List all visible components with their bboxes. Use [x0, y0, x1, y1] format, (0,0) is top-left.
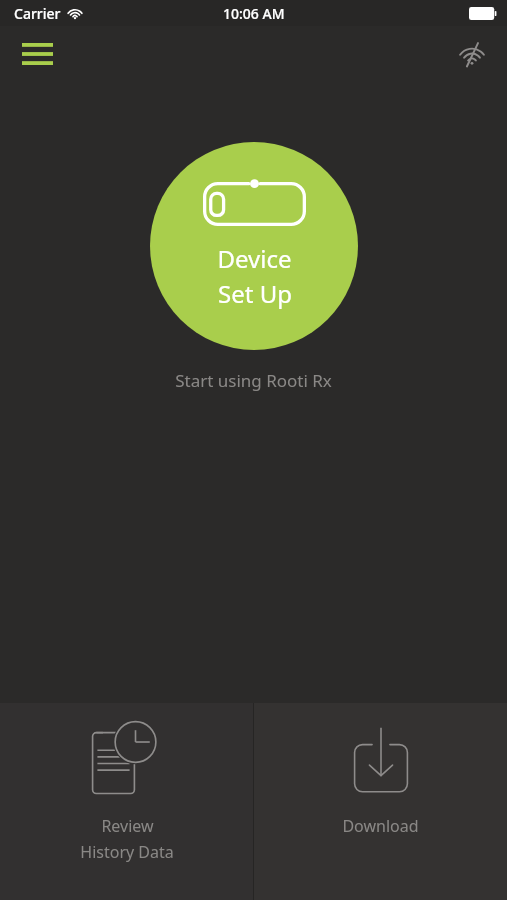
staticText: Device	[217, 242, 292, 275]
staticText: History Data	[80, 841, 174, 863]
staticText: Download	[342, 815, 419, 837]
staticText: Carrier	[14, 4, 61, 23]
staticText: Start using Rooti Rx	[175, 369, 332, 392]
button[interactable]: Device	[150, 142, 358, 350]
button[interactable]: Download	[254, 703, 507, 900]
staticText: Set Up	[218, 277, 292, 310]
button[interactable]: Review	[0, 703, 253, 900]
button[interactable]: Wi-Fi disconnected	[449, 33, 495, 75]
staticText: 10:06 AM	[223, 4, 285, 23]
button[interactable]: Menu	[14, 34, 60, 74]
staticText: Review	[101, 815, 154, 837]
